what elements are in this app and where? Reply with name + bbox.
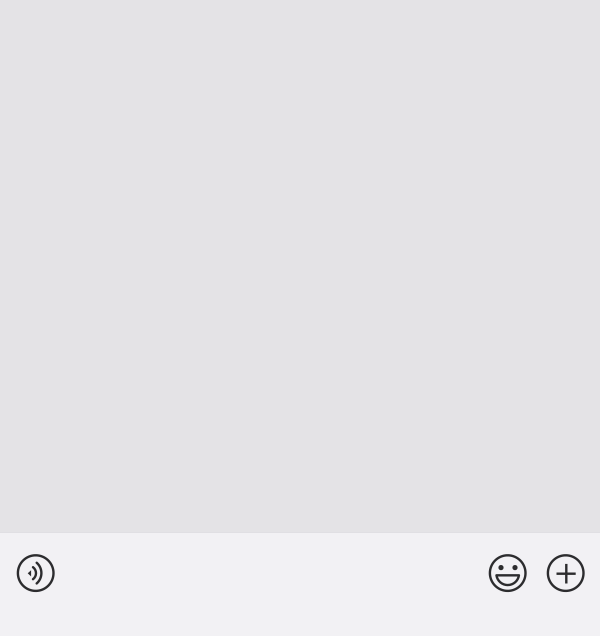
button[interactable]: Audio message (14, 551, 58, 595)
button[interactable]: Emoji (486, 551, 530, 595)
button[interactable]: Add (544, 551, 588, 595)
